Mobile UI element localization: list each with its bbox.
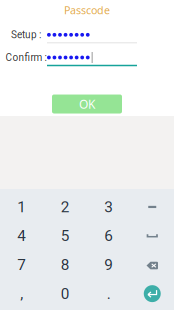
staticText: 6 (104, 227, 113, 245)
staticText: 5 (61, 227, 70, 245)
staticText: 1 (17, 198, 26, 216)
staticText: 2 (61, 198, 70, 216)
button[interactable]: 5 (43, 221, 87, 250)
button[interactable]: 9 (87, 250, 130, 279)
button[interactable]: 8 (43, 250, 87, 279)
button[interactable]: . (87, 279, 130, 308)
button[interactable]: 0 (43, 279, 87, 308)
button[interactable]: Return (130, 279, 174, 308)
button[interactable]: 4 (0, 221, 43, 250)
button[interactable]: 7 (0, 250, 43, 279)
button[interactable]: 3 (87, 192, 130, 221)
staticText: 0 (61, 285, 70, 303)
staticText: Confirm : (5, 52, 46, 63)
staticText: 9 (104, 256, 113, 274)
button[interactable]: 2 (43, 192, 87, 221)
button[interactable]: 6 (87, 221, 130, 250)
button[interactable]: Delete (130, 250, 174, 279)
button[interactable]: Space (130, 221, 174, 250)
staticText: Passcode (64, 3, 110, 17)
button[interactable]: Minus (130, 192, 174, 221)
button[interactable]: , (0, 279, 43, 308)
staticText: . (107, 285, 111, 303)
button[interactable]: OK (52, 94, 122, 113)
staticText: , (20, 285, 23, 303)
staticText: 8 (61, 256, 70, 274)
staticText: 3 (104, 198, 113, 216)
button[interactable]: 1 (0, 192, 43, 221)
staticText: 7 (17, 256, 26, 274)
staticText: 4 (17, 227, 26, 245)
staticText: Setup : (11, 29, 41, 41)
staticText: OK (79, 96, 95, 112)
